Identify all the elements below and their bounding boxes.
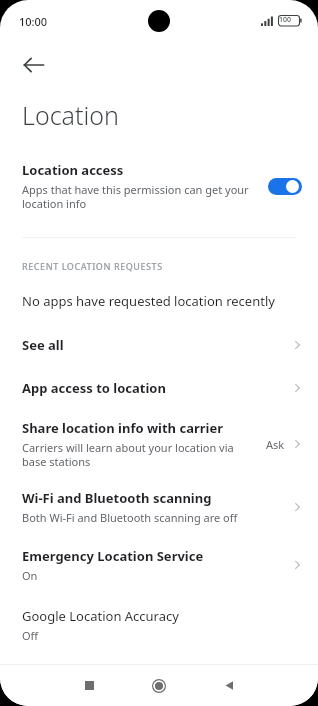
button[interactable]: Google Location Accuracy	[0, 607, 318, 643]
staticText: 10:00	[19, 14, 48, 29]
button[interactable]: Location access toggle	[268, 178, 302, 195]
button[interactable]: See all	[0, 336, 318, 354]
staticText: Google Location Accuracy	[22, 607, 179, 625]
button[interactable]: Emergency Location Service	[0, 547, 318, 583]
button[interactable]: Recent apps	[66, 665, 112, 706]
button[interactable]: Share location info with carrier	[0, 419, 318, 469]
staticText: On	[22, 568, 38, 583]
staticText: 100	[279, 15, 292, 25]
staticText: See all	[22, 336, 64, 354]
staticText: Carriers will learn about your location …	[22, 440, 260, 469]
staticText: Wi-Fi and Bluetooth scanning	[22, 489, 212, 507]
staticText: Location	[22, 98, 119, 132]
staticText: Apps that have this permission can get y…	[22, 182, 256, 211]
staticText: No apps have requested location recently	[22, 292, 275, 310]
staticText: Share location info with carrier	[22, 419, 224, 437]
staticText: App access to location	[22, 379, 166, 397]
button[interactable]: Back	[206, 665, 252, 706]
button[interactable]: Location access	[0, 159, 318, 215]
button[interactable]: Wi-Fi and Bluetooth scanning	[0, 489, 318, 525]
staticText: Ask	[266, 437, 285, 452]
staticText: Location access	[22, 161, 124, 179]
staticText: Both Wi-Fi and Bluetooth scanning are of…	[22, 510, 238, 525]
button[interactable]: App access to location	[0, 379, 318, 397]
button[interactable]: Home	[136, 665, 182, 706]
staticText: Off	[22, 628, 39, 643]
staticText: Emergency Location Service	[22, 547, 204, 565]
button[interactable]: Back	[10, 41, 58, 89]
staticText: RECENT LOCATION REQUESTS	[22, 260, 163, 272]
